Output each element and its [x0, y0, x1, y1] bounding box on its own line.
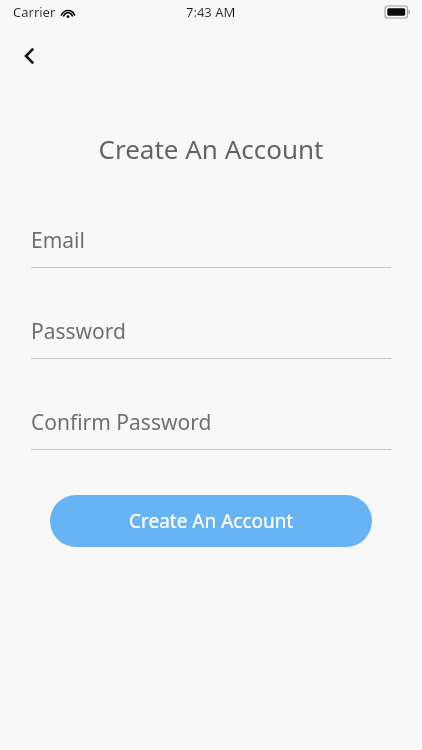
staticText: Email: [31, 226, 85, 255]
staticText: Create An Account: [129, 508, 294, 534]
button[interactable]: Back: [10, 36, 50, 76]
staticText: Create An Account: [0, 131, 422, 166]
button[interactable]: Confirm Password: [31, 408, 391, 450]
staticText: Password: [31, 317, 126, 346]
staticText: 7:43 AM: [186, 3, 236, 21]
staticText: Carrier: [13, 3, 56, 21]
button[interactable]: Create An Account: [50, 495, 372, 547]
button[interactable]: Password: [31, 317, 391, 359]
button[interactable]: Email: [31, 226, 391, 268]
staticText: Confirm Password: [31, 408, 212, 437]
